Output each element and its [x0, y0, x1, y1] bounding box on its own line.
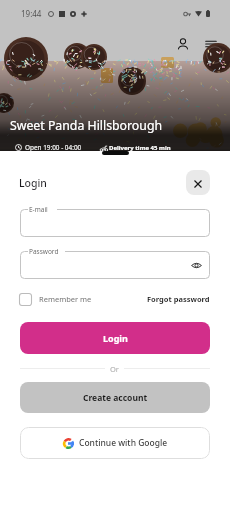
staticText: Delivery time 45 min: [109, 144, 171, 152]
button[interactable]: Close: [186, 170, 210, 195]
button[interactable]: Remember me: [19, 291, 92, 307]
button[interactable]: Back: [8, 29, 38, 59]
staticText: Login: [103, 332, 128, 344]
staticText: Password: [29, 247, 59, 256]
staticText: Or: [110, 364, 119, 374]
staticText: Create account: [83, 392, 148, 404]
button[interactable]: Continue with Google: [20, 427, 210, 459]
staticText: Sweet Panda Hillsborough: [10, 117, 163, 134]
button[interactable]: Login: [20, 322, 210, 354]
button[interactable]: Account: [169, 30, 197, 58]
button[interactable]: Menu: [197, 30, 225, 58]
button[interactable]: Create account: [20, 382, 210, 413]
staticText: Continue with Google: [79, 437, 168, 449]
button[interactable]: Show password: [188, 257, 204, 273]
staticText: Remember me: [39, 294, 92, 304]
staticText: E-mail: [29, 205, 48, 214]
staticText: Forgot password: [147, 294, 210, 304]
staticText: 19:44: [21, 8, 42, 19]
staticText: Login: [19, 176, 47, 190]
button[interactable]: Forgot password: [147, 291, 210, 307]
staticText: Open 19:00 - 04:00: [25, 143, 82, 152]
